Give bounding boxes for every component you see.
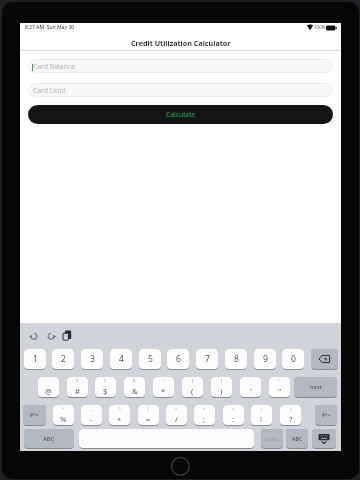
button[interactable]: 3 [81, 349, 103, 369]
button[interactable]: ¢ [95, 377, 116, 397]
staticText: # [75, 386, 80, 396]
staticText: / [175, 414, 178, 424]
staticText: ¢ [104, 378, 107, 383]
staticText: ; [203, 414, 206, 424]
staticText: ( [191, 386, 194, 396]
staticText: § [133, 378, 136, 383]
staticText: undo [265, 435, 279, 442]
staticText: Calculate [166, 110, 196, 119]
staticText: 100% [314, 24, 326, 30]
button[interactable]: 4 [110, 349, 132, 369]
staticText: 9 [263, 353, 268, 365]
staticText: ' [250, 378, 251, 383]
staticText: • [163, 378, 165, 383]
button[interactable]: ABC [286, 429, 308, 448]
button[interactable]: [ [182, 377, 203, 397]
staticText: 0 [291, 353, 296, 365]
button[interactable]: § [124, 377, 145, 397]
button[interactable]: ^ [53, 405, 74, 425]
button[interactable]: \ [109, 405, 130, 425]
button[interactable]: next [294, 377, 337, 397]
button[interactable]: ABC [24, 429, 74, 448]
button[interactable]: 9 [254, 349, 276, 369]
staticText: 6 [176, 353, 181, 365]
button[interactable]: 0 [282, 349, 304, 369]
staticText: ¥ [76, 378, 79, 383]
staticText: " [278, 386, 282, 396]
staticText: ? [289, 414, 293, 424]
button[interactable] [311, 349, 338, 369]
staticText: 8:27 AM Sun May 30 [25, 24, 75, 31]
staticText: [ [192, 378, 194, 383]
staticText: 3 [90, 353, 95, 365]
button[interactable]: 5 [139, 349, 161, 369]
button[interactable]: ] [211, 377, 232, 397]
button[interactable] [79, 429, 254, 448]
staticText: ¿ [290, 406, 292, 411]
staticText: \ [119, 406, 121, 411]
button[interactable]: ' [240, 377, 261, 397]
staticText: 8 [234, 353, 239, 365]
staticText: @ [45, 386, 52, 396]
button[interactable]: 7 [196, 349, 218, 369]
staticText: ) [220, 386, 223, 396]
staticText: % [60, 414, 67, 424]
button[interactable]: ¡ [251, 405, 272, 425]
button[interactable]: | [138, 405, 159, 425]
button[interactable]: #+= [23, 405, 46, 425]
staticText: « [232, 406, 235, 411]
staticText: 1 [33, 353, 38, 365]
button[interactable]: Calculate [28, 105, 333, 124]
staticText: ¡ [261, 406, 263, 411]
staticText: ] [221, 378, 223, 383]
button[interactable]: Card Limit [28, 83, 333, 97]
staticText: $ [103, 386, 108, 396]
button[interactable]: undo [261, 429, 283, 448]
staticText: ABC [292, 435, 303, 442]
staticText: - [90, 414, 93, 424]
staticText: 7 [205, 353, 210, 365]
staticText: Card Balance [33, 62, 75, 71]
staticText: ! [260, 414, 263, 424]
button[interactable]: ¿ [280, 405, 301, 425]
staticText: next [310, 383, 322, 391]
button[interactable]: 2 [52, 349, 74, 369]
button[interactable]: 8 [225, 349, 247, 369]
staticText: < [175, 406, 178, 411]
staticText: ^ [62, 406, 65, 411]
button[interactable]: ` [38, 377, 59, 397]
staticText: #+= [322, 412, 331, 419]
staticText: & [132, 386, 138, 396]
staticText: ` [48, 378, 50, 383]
staticText: _ [91, 406, 93, 411]
staticText: ' [250, 386, 252, 396]
button[interactable]: #+= [315, 405, 337, 425]
staticText: 5 [148, 353, 153, 365]
button[interactable]: • [153, 377, 174, 397]
staticText: ABC [43, 435, 55, 443]
staticText: ~ [278, 378, 281, 383]
button[interactable]: ¥ [67, 377, 88, 397]
button[interactable]: ~ [269, 377, 290, 397]
staticText: + [117, 414, 122, 424]
button[interactable]: 1 [24, 349, 46, 369]
button[interactable]: Card Balance [28, 59, 333, 73]
staticText: > [203, 406, 206, 411]
staticText: | [147, 406, 150, 411]
button[interactable]: 6 [167, 349, 189, 369]
button[interactable]: < [166, 405, 187, 425]
button[interactable]: _ [81, 405, 102, 425]
staticText: = [146, 414, 151, 424]
staticText: Card Limit [33, 86, 66, 95]
staticText: * [161, 386, 166, 396]
button[interactable]: « [223, 405, 244, 425]
button[interactable]: > [194, 405, 215, 425]
staticText: #+= [30, 412, 39, 419]
staticText: : [232, 414, 235, 424]
button[interactable] [312, 429, 336, 448]
staticText: Credit Utilization Calculator [131, 38, 231, 48]
staticText: 2 [61, 353, 66, 365]
staticText: 4 [119, 353, 124, 365]
